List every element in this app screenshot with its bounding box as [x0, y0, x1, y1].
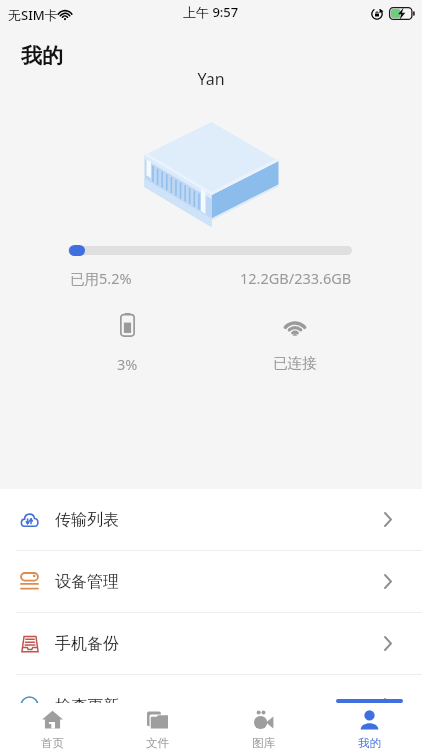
staticText: 图库: [252, 736, 275, 750]
staticText: 我的: [21, 43, 63, 69]
staticText: 设备管理: [55, 572, 119, 592]
button[interactable]: 我的: [316, 703, 422, 750]
staticText: 已用5.2%: [70, 268, 132, 288]
button[interactable]: 设备管理: [0, 551, 422, 612]
staticText: 已连接: [273, 354, 317, 372]
button[interactable]: 检查更新: [0, 675, 422, 736]
button[interactable]: 首页: [0, 703, 105, 750]
button[interactable]: 手机备份: [0, 613, 422, 674]
staticText: 检查更新: [55, 696, 119, 716]
staticText: 文件: [146, 736, 169, 750]
staticText: 3%: [117, 354, 138, 374]
button[interactable]: 图库: [210, 703, 316, 750]
staticText: 无SIM卡: [8, 6, 58, 24]
staticText: 上午 9:57: [183, 3, 239, 21]
staticText: 首页: [41, 736, 64, 750]
staticText: 12.2GB/233.6GB: [240, 268, 352, 288]
staticText: 传输列表: [55, 510, 119, 530]
staticText: 手机备份: [55, 634, 119, 654]
staticText: 我的: [358, 736, 381, 750]
button[interactable]: 传输列表: [0, 489, 422, 550]
staticText: Yan: [0, 68, 422, 90]
button[interactable]: 文件: [105, 703, 210, 750]
